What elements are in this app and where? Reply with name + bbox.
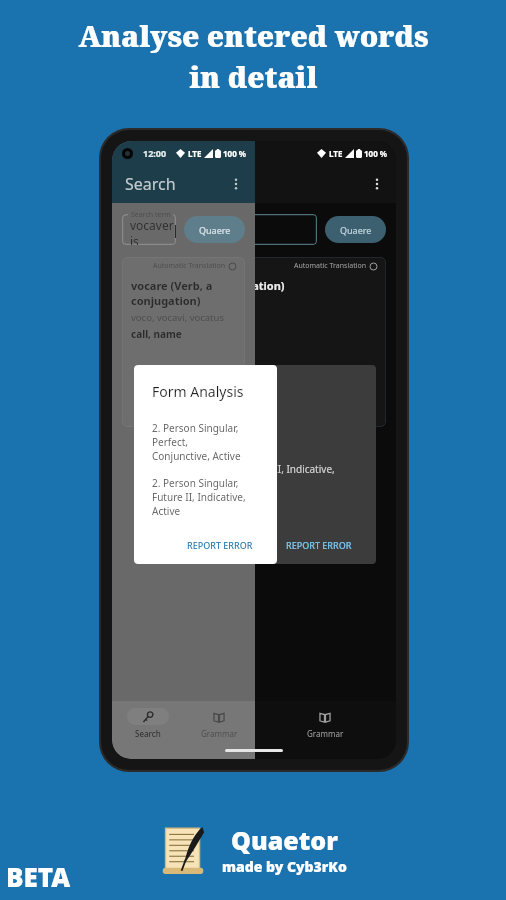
staticText: 2. Person Singular, Perfect, Conjunctive… [152, 421, 278, 449]
staticText: call, name [131, 312, 182, 326]
button[interactable]: Automatic Translation [122, 257, 386, 427]
staticText: 100 % [364, 148, 388, 159]
button[interactable]: vocaveris [122, 214, 176, 245]
button[interactable]: Grammar [254, 701, 396, 745]
staticText: Quaetor [231, 823, 338, 857]
button[interactable]: Search [112, 701, 254, 745]
staticText: made by Cyb3rKo [222, 857, 347, 876]
staticText: Form Analysis [152, 382, 244, 401]
staticText: 2. Person Singular, Future II, Indicativ… [152, 462, 335, 490]
button[interactable]: Grammar [183, 701, 255, 745]
staticText: Search [125, 173, 176, 195]
staticText: BETA [6, 859, 71, 894]
staticText: vocare (Verb, a conjugation) [131, 278, 285, 293]
button[interactable]: REPORT ERROR [181, 534, 259, 556]
staticText: Quaere [340, 224, 372, 236]
staticText: REPORT ERROR [187, 539, 253, 551]
staticText: voco, vocavi, vocatus [131, 296, 224, 309]
staticText: Search [125, 173, 176, 195]
button[interactable]: More options [362, 169, 392, 199]
button[interactable]: Search [112, 701, 183, 745]
staticText: 12:00 [143, 147, 167, 159]
button[interactable]: vocaveris [122, 214, 317, 245]
button[interactable]: Quaere [325, 216, 386, 243]
button[interactable]: More options [221, 169, 251, 199]
button[interactable]: Automatic Translation [122, 257, 245, 427]
staticText: Search [135, 728, 161, 739]
staticText: Grammar [307, 728, 344, 739]
staticText: Analyse entered words [78, 16, 429, 55]
staticText: voco, vocavi, vocatus [131, 311, 224, 324]
button[interactable]: REPORT ERROR [280, 534, 358, 556]
staticText: 2. Person Singular, Future II, Indicativ… [152, 476, 259, 518]
staticText: Search term [131, 210, 171, 220]
staticText: call, name [131, 327, 182, 341]
button[interactable]: Quaere [184, 216, 245, 243]
staticText: REPORT ERROR [286, 539, 352, 551]
staticText: Search term [131, 210, 171, 220]
staticText: Quaere [199, 224, 231, 236]
staticText: LTE [329, 148, 343, 159]
staticText: 2. Person Singular, Perfect, Conjunctive… [152, 421, 259, 463]
staticText: Grammar [201, 728, 238, 739]
staticText: in detail [189, 57, 318, 96]
staticText: 100 % [223, 148, 247, 159]
staticText: Automatic Translation [153, 261, 226, 271]
staticText: LTE [188, 148, 202, 159]
staticText: Form Analysis [152, 382, 244, 401]
staticText: vocaveris [130, 223, 183, 239]
staticText: Automatic Translation [294, 261, 367, 271]
staticText: vocare (Verb, a conjugation) [131, 278, 236, 308]
staticText: 12:00 [143, 147, 167, 159]
staticText: vocaveris [130, 217, 176, 245]
